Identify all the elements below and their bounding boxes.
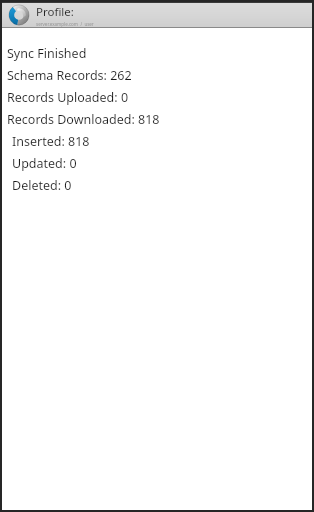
staticText: Updated: 0	[12, 155, 77, 172]
staticText: Sync Finished	[7, 45, 87, 62]
staticText: Inserted: 818	[12, 133, 90, 150]
staticText: Records Uploaded: 0	[7, 89, 129, 106]
staticText: Deleted: 0	[12, 177, 72, 194]
button[interactable]: App icon	[2, 2, 312, 28]
staticText: server.example.com / user	[36, 21, 94, 27]
staticText: Records Downloaded: 818	[7, 111, 160, 128]
other: App icon	[8, 4, 30, 26]
staticText: Profile:	[36, 4, 74, 20]
staticText: Schema Records: 262	[7, 67, 132, 84]
